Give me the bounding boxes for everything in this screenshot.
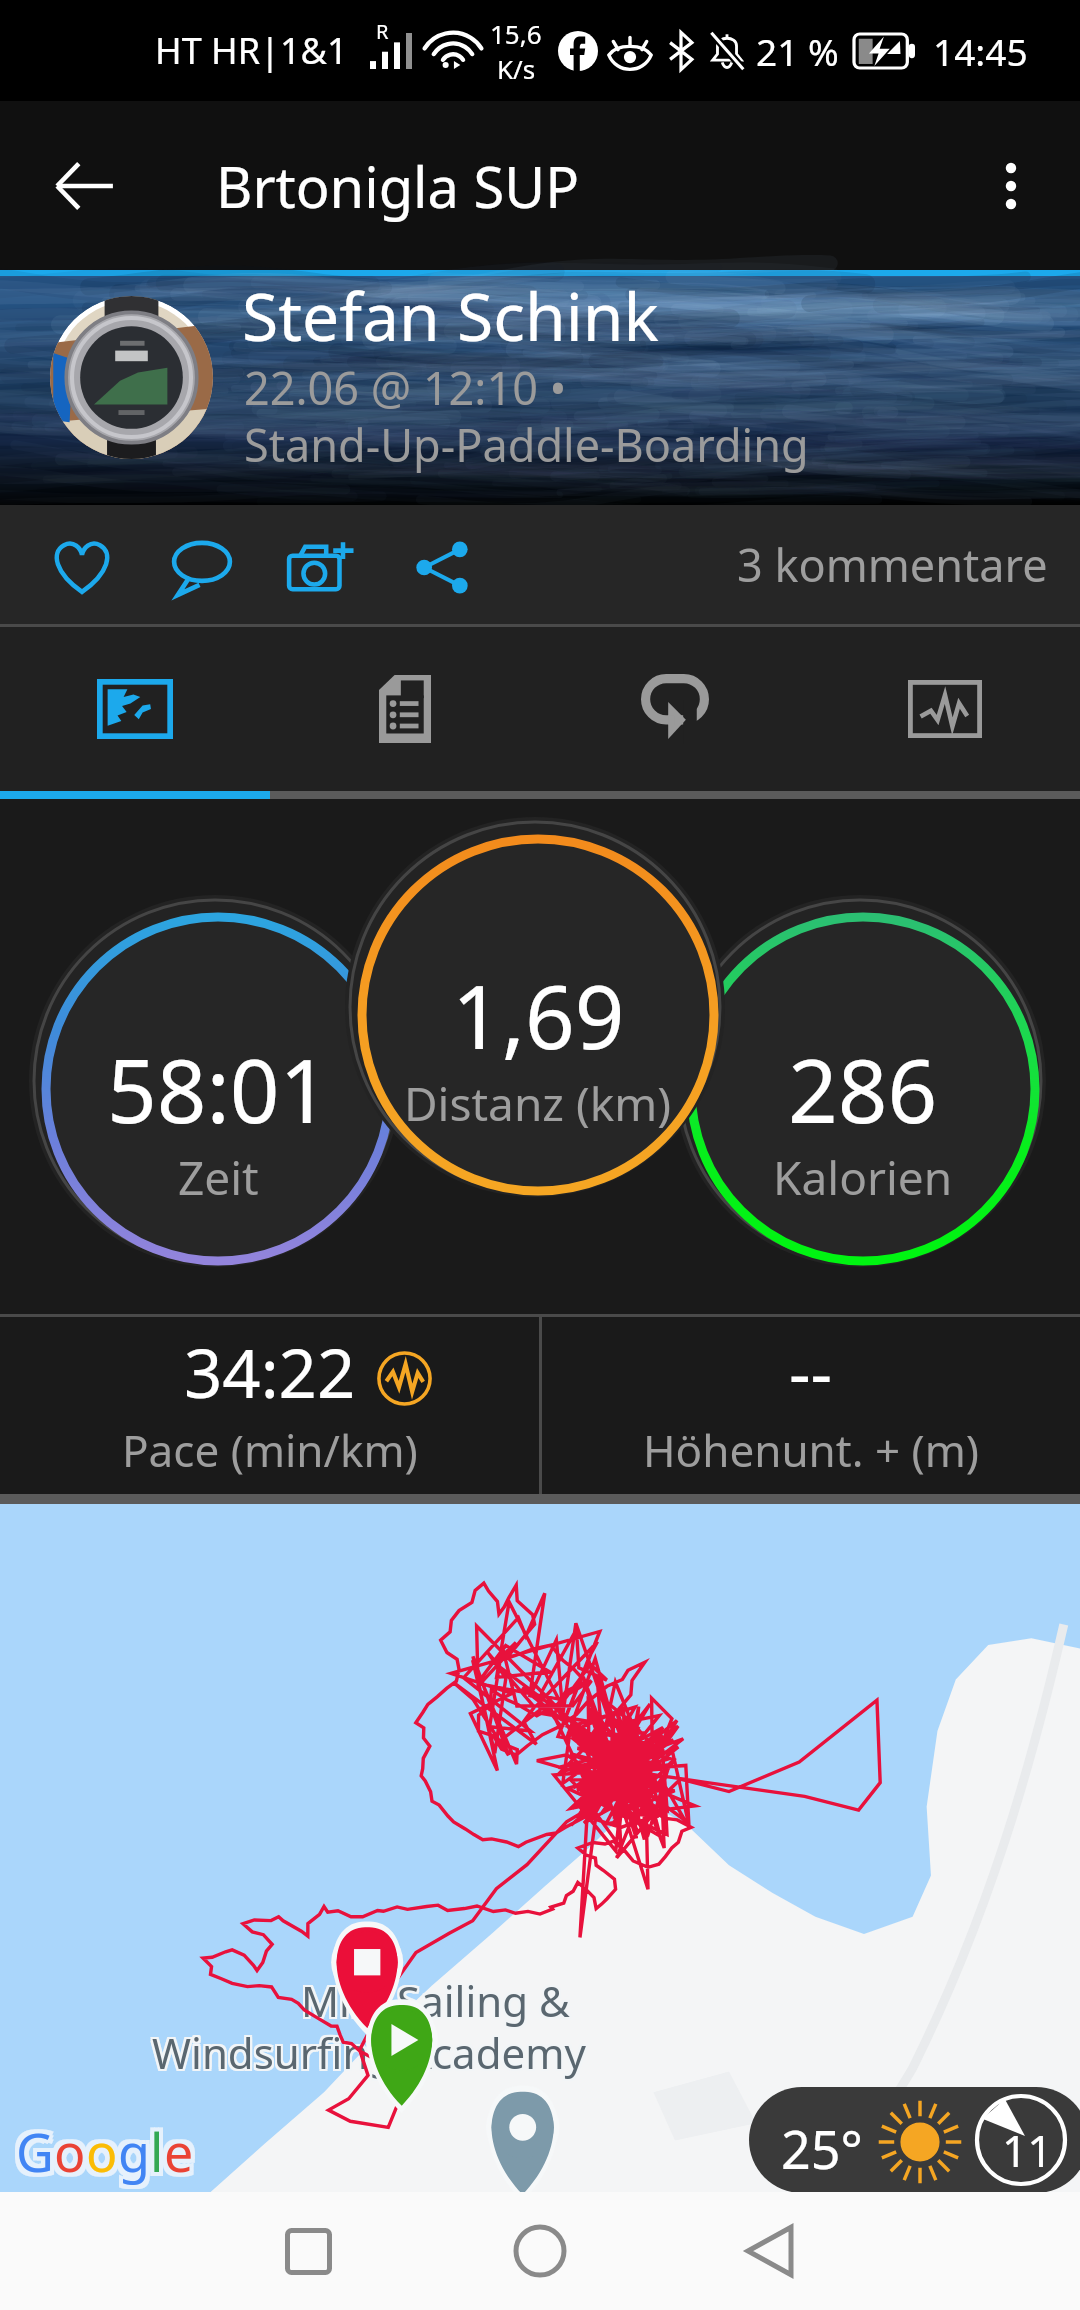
staticText: o [50,2116,82,2187]
staticText: l [150,2112,164,2183]
staticText: o [54,2120,86,2191]
button[interactable]: Comment [142,505,262,624]
staticText: g [114,2116,146,2187]
staticText: 22.06 @ 12:10 • [244,357,567,418]
button[interactable]: Back [710,2192,830,2310]
staticText: Brtonigla SUP [216,148,580,224]
staticText: l [154,2112,168,2183]
staticText: 34:22 [184,1326,356,1416]
staticText: HT HR|1&1 [155,26,348,75]
button[interactable]: Graph [810,627,1080,791]
staticText: o [90,2116,122,2187]
staticText: Windsurfing Academy [154,2022,588,2079]
staticText: Windsurfing Academy [150,2024,584,2081]
staticText: o [58,2120,90,2191]
staticText: l [154,2120,168,2191]
staticText: G [12,2120,50,2191]
button[interactable]: More options [956,131,1066,241]
button[interactable]: Like [22,505,142,624]
staticText: g [122,2116,154,2187]
staticText: g [118,2116,150,2187]
staticText: Windsurfing Academy [154,2024,588,2081]
button[interactable]: Laps [540,627,810,791]
staticText: Milo Sailing & [303,1972,572,2029]
staticText: Milo Sailing & [301,1970,570,2027]
staticText: e [168,2112,198,2183]
staticText: o [82,2112,114,2183]
staticText: e [164,2120,194,2191]
staticText: e [164,2112,194,2183]
staticText: g [122,2120,154,2191]
staticText: Milo Sailing & [299,1972,568,2029]
staticText: Pace (min/km) [122,1420,418,1480]
staticText: g [118,2112,150,2183]
staticText: G [16,2116,54,2187]
staticText: o [82,2120,114,2191]
staticText: o [86,2112,118,2183]
staticText: Milo Sailing & [299,1970,568,2027]
staticText: l [146,2116,160,2187]
staticText: 21 % [756,26,839,76]
staticText: l [146,2112,160,2183]
staticText: l [146,2120,160,2191]
button[interactable]: 286 [688,1003,1038,1233]
staticText: Höhenunt. + (m) [643,1420,980,1480]
staticText: 11 [1002,2120,1053,2180]
staticText: Stand-Up-Paddle-Boarding [244,414,809,475]
staticText: -- [789,1326,833,1416]
staticText: Zeit [178,1146,259,1209]
staticText: Windsurfing Academy [152,2026,586,2083]
staticText: l [150,2116,164,2187]
staticText: o [82,2116,114,2187]
button[interactable]: 34:22 [0,1317,539,1494]
staticText: o [86,2116,118,2187]
button[interactable]: Details [270,627,540,791]
button[interactable]: Recent apps [248,2192,368,2310]
button[interactable]: 1,69 [363,929,713,1159]
staticText: 1,69 [452,956,625,1074]
staticText: o [50,2120,82,2191]
staticText: Windsurfing Academy [152,2024,586,2081]
staticText: o [50,2112,82,2183]
staticText: Milo Sailing & [299,1974,568,2031]
staticText: o [90,2120,122,2191]
button[interactable]: 58:01 [43,1003,393,1233]
button[interactable]: Google [16,2116,194,2187]
staticText: Milo Sailing & [303,1974,572,2031]
staticText: Windsurfing Academy [150,2022,584,2079]
button[interactable]: Route map [0,1504,1080,2192]
button[interactable]: Back [30,131,140,241]
button[interactable]: Map [0,627,270,791]
staticText: e [168,2116,198,2187]
staticText: Distanz (km) [404,1072,672,1135]
button[interactable]: Profile photo [50,296,213,459]
staticText: e [164,2116,194,2187]
staticText: R [376,18,389,45]
staticText: Windsurfing Academy [152,2022,586,2079]
staticText: Kalorien [773,1146,953,1209]
staticText: 25° [781,2113,863,2184]
staticText: G [20,2116,58,2187]
staticText: Milo Sailing & [301,1974,570,2031]
staticText: e [168,2120,198,2191]
staticText: o [58,2112,90,2183]
staticText: Milo Sailing & [301,1972,570,2029]
button[interactable]: -- [542,1317,1080,1494]
staticText: Windsurfing Academy [154,2026,588,2083]
button[interactable]: Home [480,2192,600,2310]
button[interactable]: Add photo [262,505,382,624]
staticText: G [12,2112,50,2183]
staticText: e [160,2116,190,2187]
staticText: G [16,2120,54,2191]
staticText: o [54,2112,86,2183]
staticText: g [122,2112,154,2183]
button[interactable]: Share [382,505,502,624]
staticText: o [54,2116,86,2187]
staticText: l [154,2116,168,2187]
staticText: g [118,2120,150,2191]
staticText: 3 kommentare [737,534,1048,595]
button[interactable]: Weather [749,2087,1080,2193]
staticText: 286 [788,1030,938,1148]
staticText: o [58,2116,90,2187]
staticText: g [114,2120,146,2191]
